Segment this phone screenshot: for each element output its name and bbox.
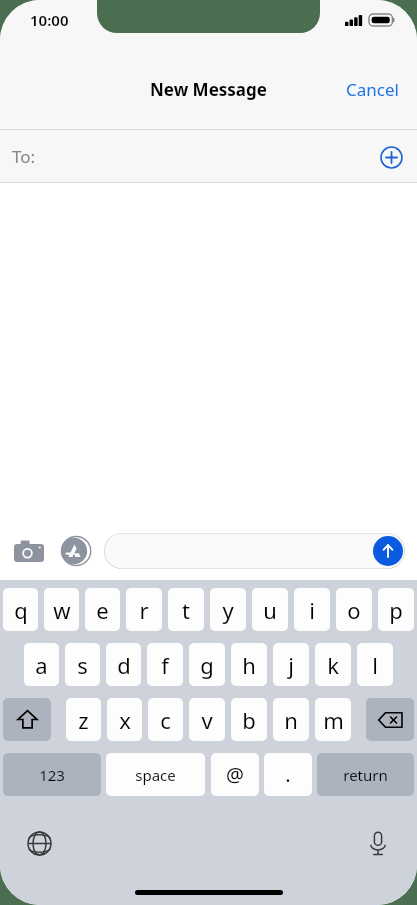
button[interactable]: c	[148, 698, 183, 741]
staticText: t	[182, 595, 190, 625]
staticText: 10:00	[30, 10, 69, 30]
button[interactable]: .	[264, 753, 312, 796]
staticText: w	[53, 595, 71, 625]
button[interactable]: b	[231, 698, 267, 741]
button[interactable]: h	[231, 643, 267, 686]
button[interactable]: Add contact	[375, 141, 407, 173]
button[interactable]: x	[107, 698, 142, 741]
staticText: d	[117, 650, 131, 680]
button[interactable]: p	[378, 588, 414, 631]
staticText: p	[389, 595, 403, 625]
button[interactable]: App Store	[58, 534, 92, 568]
button[interactable]: m	[315, 698, 351, 741]
button[interactable]: a	[24, 643, 59, 686]
staticText: To:	[12, 145, 36, 168]
button[interactable]: 123	[3, 753, 101, 796]
button[interactable]: i	[294, 588, 330, 631]
button[interactable]: f	[147, 643, 183, 686]
button[interactable]: z	[66, 698, 101, 741]
button[interactable]: y	[210, 588, 246, 631]
button[interactable]: v	[189, 698, 225, 741]
button[interactable]: Send	[373, 536, 403, 566]
staticText: y	[222, 595, 234, 625]
staticText: return	[343, 765, 388, 785]
staticText: @	[226, 761, 244, 788]
staticText: e	[96, 595, 109, 625]
staticText: v	[201, 705, 213, 735]
button[interactable]: r	[126, 588, 162, 631]
button[interactable]: space	[106, 753, 205, 796]
staticText: .	[285, 761, 291, 788]
staticText: a	[35, 650, 48, 680]
staticText: k	[327, 650, 339, 680]
button[interactable]: n	[273, 698, 309, 741]
staticText: space	[135, 765, 176, 785]
button[interactable]: o	[336, 588, 372, 631]
button[interactable]: @	[211, 753, 259, 796]
staticText: z	[78, 705, 89, 735]
staticText: i	[309, 595, 315, 625]
staticText: b	[242, 705, 256, 735]
staticText: u	[263, 595, 277, 625]
button[interactable]: e	[85, 588, 120, 631]
staticText: 123	[39, 765, 65, 785]
staticText: q	[14, 595, 28, 625]
button[interactable]: s	[65, 643, 100, 686]
button[interactable]: q	[3, 588, 38, 631]
staticText: j	[288, 650, 294, 680]
staticText: l	[372, 650, 378, 680]
button[interactable]: l	[357, 643, 393, 686]
staticText: n	[284, 705, 298, 735]
button[interactable]: u	[252, 588, 288, 631]
staticText: Cancel	[346, 78, 399, 101]
staticText: c	[160, 705, 171, 735]
button[interactable]: Cancel	[328, 68, 417, 111]
button[interactable]: d	[106, 643, 141, 686]
button[interactable]: return	[317, 753, 414, 796]
staticText: m	[323, 705, 344, 735]
button[interactable]: Change keyboard	[22, 826, 56, 860]
button[interactable]: k	[315, 643, 351, 686]
button[interactable]: Shift	[3, 698, 51, 741]
button[interactable]: Dictate	[361, 826, 395, 860]
button[interactable]: Send	[104, 533, 405, 569]
button[interactable]: g	[189, 643, 225, 686]
staticText: New Message	[150, 78, 267, 101]
staticText: g	[200, 650, 214, 680]
button[interactable]: w	[44, 588, 79, 631]
button[interactable]: Backspace	[366, 698, 414, 741]
staticText: r	[139, 595, 149, 625]
button[interactable]: Camera	[12, 534, 46, 568]
staticText: f	[161, 650, 169, 680]
staticText: s	[77, 650, 88, 680]
button[interactable]: t	[168, 588, 204, 631]
button[interactable]: j	[273, 643, 309, 686]
staticText: h	[242, 650, 256, 680]
staticText: x	[119, 705, 131, 735]
staticText: o	[347, 595, 361, 625]
